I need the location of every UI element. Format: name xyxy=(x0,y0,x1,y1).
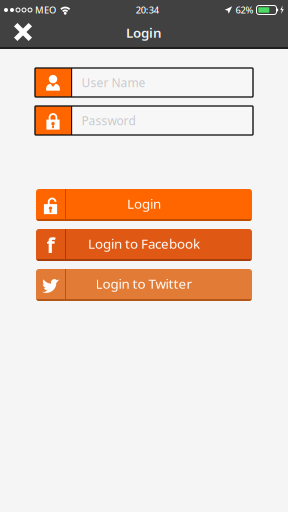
staticText: Login xyxy=(127,195,161,212)
button[interactable]: Close xyxy=(0,20,46,47)
staticText: MEO xyxy=(35,4,56,16)
staticText: 62% xyxy=(235,4,253,16)
staticText: Login xyxy=(126,24,162,41)
staticText: f xyxy=(46,231,54,259)
staticText: Login to Facebook xyxy=(88,235,200,252)
staticText: Password xyxy=(81,112,135,128)
staticText: 20:34 xyxy=(136,4,159,16)
staticText: User Name xyxy=(81,74,145,90)
button[interactable]: Login xyxy=(36,189,252,221)
button[interactable]: Login to Twitter xyxy=(36,269,252,301)
button[interactable]: f xyxy=(36,229,252,261)
staticText: Login to Twitter xyxy=(95,275,192,292)
